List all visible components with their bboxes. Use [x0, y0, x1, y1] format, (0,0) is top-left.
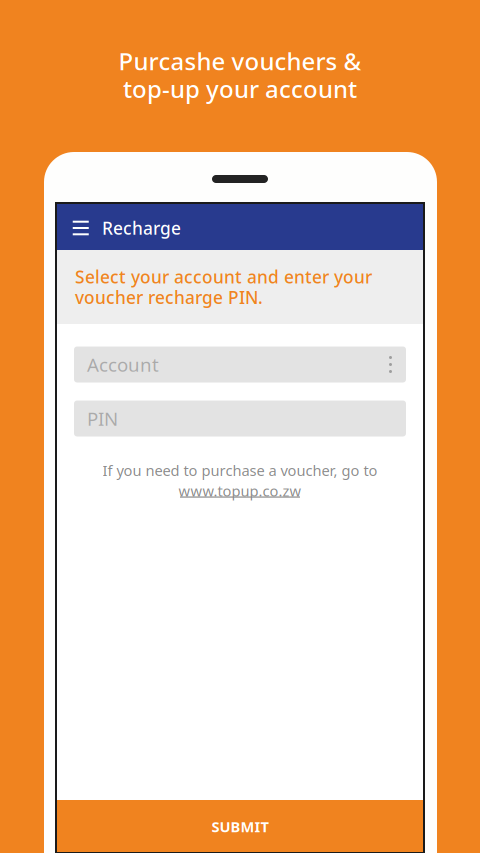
staticText: voucher recharge PIN.	[75, 286, 263, 309]
staticText: If you need to purchase a voucher, go to	[102, 460, 377, 480]
staticText: top-up your account	[123, 73, 357, 105]
staticText: PIN	[87, 406, 118, 431]
staticText: Account	[87, 352, 159, 377]
staticText: Recharge	[102, 216, 181, 239]
staticText: SUBMIT	[211, 817, 268, 836]
staticText: www.topup.co.zw	[178, 481, 301, 500]
button[interactable]: www.topup.co.zw	[178, 481, 301, 498]
staticText: Select your account and enter your	[75, 265, 372, 288]
button[interactable]: Open navigation menu	[59, 203, 102, 250]
button[interactable]: SUBMIT	[56, 800, 424, 853]
button[interactable]: PIN	[74, 400, 406, 436]
button[interactable]: Account	[74, 346, 406, 382]
staticText: Purcashe vouchers &	[118, 45, 361, 77]
